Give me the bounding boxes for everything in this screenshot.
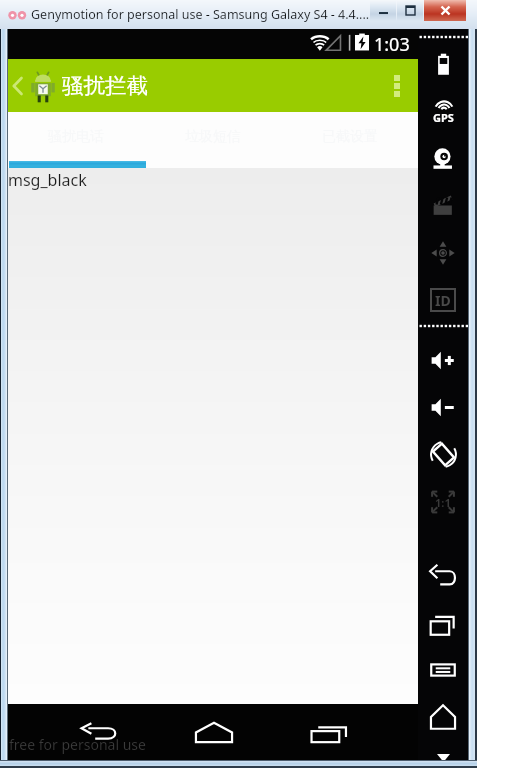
button[interactable]: Screen recorder [418, 182, 468, 229]
button[interactable]: Minimize [370, 0, 396, 21]
staticText: ID [435, 291, 451, 310]
button[interactable]: Menu [418, 646, 468, 693]
button[interactable]: Volume up [418, 337, 468, 384]
button[interactable]: Back [77, 715, 121, 749]
button[interactable]: Rotate screen [418, 431, 468, 478]
staticText: msg_black [8, 169, 87, 191]
staticText: 1:03 [374, 32, 410, 57]
button[interactable]: Back [418, 552, 468, 599]
button[interactable]: Identifiers [418, 276, 468, 323]
button[interactable]: Volume down [418, 384, 468, 431]
staticText: free for personal use [9, 735, 146, 754]
button[interactable]: Navigate up [8, 59, 59, 112]
button[interactable]: Home [192, 715, 236, 749]
staticText: Genymotion for personal use - Samsung Ga… [31, 6, 370, 23]
button[interactable]: Recent apps [308, 715, 352, 749]
staticText: GPS [433, 110, 454, 125]
staticText: 1:1 [435, 495, 451, 510]
button[interactable]: Close [424, 0, 466, 21]
button[interactable]: More [418, 748, 468, 768]
button[interactable]: Home [418, 693, 468, 740]
button[interactable]: Multi-touch [418, 229, 468, 276]
staticText: 骚扰拦截 [62, 72, 148, 99]
button[interactable]: Scale 1:1 [418, 478, 468, 525]
button[interactable]: More options [376, 59, 418, 112]
button[interactable]: Maximize [397, 0, 423, 21]
button[interactable]: Battery [418, 41, 468, 88]
button[interactable]: GPS [418, 88, 468, 135]
button[interactable]: Camera [418, 135, 468, 182]
button[interactable]: Recent apps [418, 599, 468, 646]
